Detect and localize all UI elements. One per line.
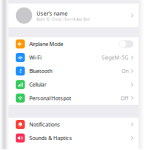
button[interactable]: Personal Hotspot [8, 91, 138, 105]
staticText: Cellular [29, 81, 46, 88]
staticText: Wi-Fi [29, 54, 41, 61]
staticText: User's name [36, 10, 67, 17]
staticText: Sounds & Haptics [29, 134, 72, 142]
staticText: Apple ID, iCloud, iTunes & App Store [36, 18, 90, 21]
button[interactable]: Airplane Mode [8, 37, 138, 51]
staticText: Personal Hotspot [29, 94, 71, 102]
staticText: Bluetooth [29, 67, 52, 75]
button[interactable]: User's name [8, 4, 138, 27]
staticText: SiegeM-5G [102, 54, 129, 61]
button[interactable]: Notifications [8, 118, 138, 131]
staticText: Off [121, 94, 129, 102]
staticText: On [122, 67, 129, 75]
button[interactable]: Bluetooth [8, 64, 138, 78]
button[interactable]: Wi-Fi [8, 51, 138, 64]
button[interactable]: Sounds & Haptics [8, 131, 138, 145]
staticText: Notifications [29, 121, 60, 128]
staticText: Airplane Mode [29, 40, 63, 47]
button[interactable]: Cellular [8, 78, 138, 91]
